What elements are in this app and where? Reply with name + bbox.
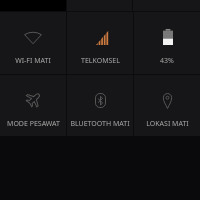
staticText: LOKASI MATI <box>146 119 189 129</box>
button[interactable]: Wi-Fi off <box>0 12 66 74</box>
button[interactable]: Battery level <box>134 12 200 74</box>
staticText: MODE PESAWAT <box>7 119 60 129</box>
button[interactable]: Airplane mode <box>0 75 66 136</box>
button[interactable]: Mobile signal <box>67 12 133 74</box>
staticText: BLUETOOTH MATI <box>70 119 130 129</box>
staticText: TELKOMSEL <box>81 56 120 66</box>
staticText: 43% <box>160 56 174 66</box>
button[interactable]: Location off <box>134 75 200 136</box>
button[interactable]: Bluetooth off <box>67 75 133 136</box>
staticText: WI-FI MATI <box>15 56 51 66</box>
